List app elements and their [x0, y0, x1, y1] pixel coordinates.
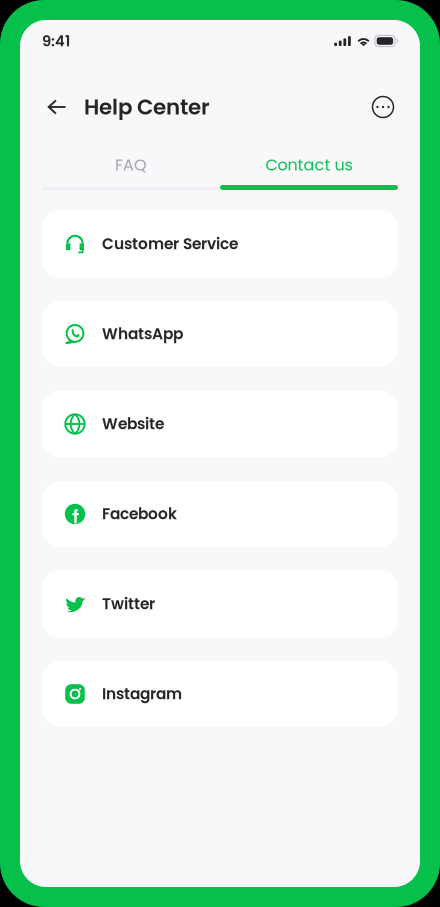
button[interactable]: FAQ: [42, 152, 220, 178]
button[interactable]: Twitter: [42, 571, 398, 637]
staticText: WhatsApp: [102, 323, 183, 345]
staticText: Customer Service: [102, 233, 238, 255]
staticText: FAQ: [115, 154, 147, 176]
button[interactable]: Back: [41, 91, 73, 123]
button[interactable]: WhatsApp: [42, 301, 398, 367]
staticText: Contact us: [265, 154, 352, 176]
staticText: Help Center: [84, 92, 210, 122]
staticText: Instagram: [102, 683, 182, 705]
staticText: Website: [102, 413, 164, 435]
button[interactable]: Customer Service: [42, 211, 398, 277]
staticText: Facebook: [102, 503, 177, 525]
button[interactable]: Instagram: [42, 661, 398, 727]
staticText: Twitter: [102, 593, 155, 615]
staticText: 9:41: [42, 31, 70, 51]
button[interactable]: More options: [368, 92, 398, 122]
button[interactable]: Facebook: [42, 481, 398, 547]
button[interactable]: Website: [42, 391, 398, 457]
button[interactable]: Contact us: [220, 152, 398, 178]
